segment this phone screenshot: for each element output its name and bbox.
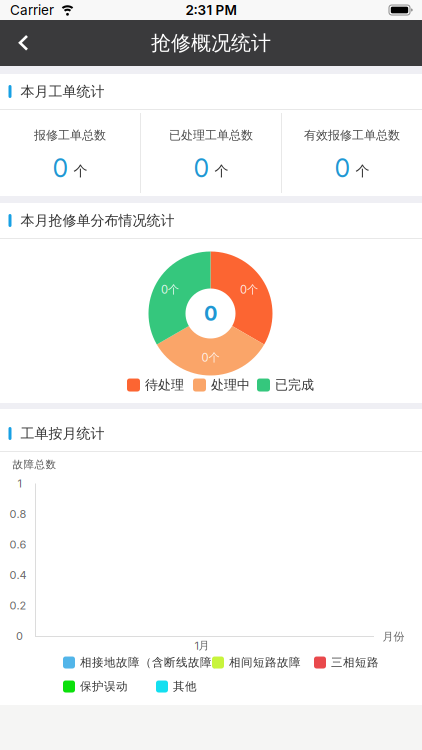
staticText: 0个 bbox=[201, 350, 219, 364]
staticText: 本月抢修单分布情况统计 bbox=[20, 212, 174, 229]
staticText: 个 bbox=[73, 162, 87, 180]
staticText: 个 bbox=[214, 162, 228, 180]
staticText: 工单按月统计 bbox=[20, 425, 104, 442]
staticText: 相接地故障（含断线故障） bbox=[80, 655, 224, 670]
staticText: 0 bbox=[334, 153, 350, 183]
staticText: 2:31 PM bbox=[185, 2, 236, 18]
staticText: 1 bbox=[17, 477, 21, 490]
staticText: 本月工单统计 bbox=[20, 83, 104, 100]
staticText: 保护误动 bbox=[80, 679, 128, 694]
staticText: 0.8 bbox=[9, 507, 26, 521]
button[interactable]: Back bbox=[0, 26, 44, 60]
staticText: 0 bbox=[204, 301, 217, 326]
staticText: 相间短路故障 bbox=[229, 655, 301, 670]
staticText: 报修工单总数 bbox=[34, 128, 106, 143]
staticText: 0.4 bbox=[9, 568, 26, 582]
staticText: 0.6 bbox=[9, 538, 26, 551]
staticText: 故障总数 bbox=[12, 458, 56, 471]
staticText: 三相短路 bbox=[331, 655, 379, 670]
staticText: 0个 bbox=[161, 282, 179, 296]
staticText: 0个 bbox=[240, 282, 258, 296]
staticText: 0 bbox=[16, 629, 23, 643]
staticText: 已完成 bbox=[275, 377, 314, 393]
staticText: 有效报修工单总数 bbox=[304, 128, 400, 143]
staticText: 处理中 bbox=[211, 377, 250, 393]
staticText: 0 bbox=[193, 153, 209, 183]
staticText: 月份 bbox=[382, 630, 404, 643]
staticText: 个 bbox=[355, 162, 369, 180]
staticText: 已处理工单总数 bbox=[169, 128, 253, 143]
staticText: 待处理 bbox=[145, 377, 184, 393]
staticText: Carrier bbox=[10, 2, 54, 18]
staticText: 0.2 bbox=[9, 599, 26, 612]
staticText: 1月 bbox=[194, 639, 209, 652]
staticText: 0 bbox=[52, 153, 68, 183]
staticText: 抢修概况统计 bbox=[151, 30, 271, 56]
staticText: 其他 bbox=[173, 679, 197, 694]
